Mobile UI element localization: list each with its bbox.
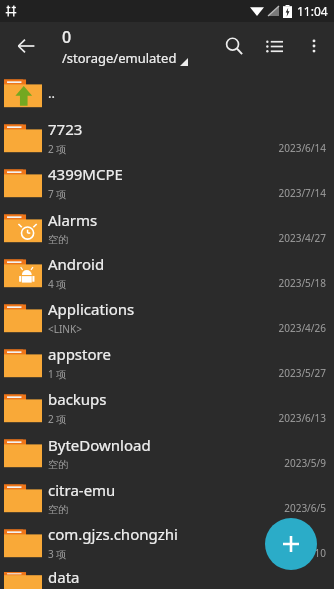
staticText: 2023/5/18	[278, 276, 326, 290]
button[interactable]: Applications	[0, 295, 334, 340]
staticText: Applications	[48, 299, 135, 319]
staticText: 4 项	[48, 277, 67, 291]
button[interactable]: Back	[4, 24, 48, 68]
staticText: ByteDownload	[48, 435, 151, 455]
staticText: /storage/emulated	[62, 49, 177, 67]
staticText: ..	[48, 84, 55, 102]
button[interactable]: 0	[62, 26, 188, 67]
staticText: 空的	[48, 503, 68, 516]
staticText: 0	[62, 26, 72, 48]
button[interactable]: 7723	[0, 115, 334, 160]
button[interactable]: Search	[214, 26, 254, 66]
staticText: 3 项	[48, 547, 67, 561]
button[interactable]: View mode	[254, 26, 294, 66]
staticText: 2 项	[48, 142, 67, 156]
staticText: 2023/4/27	[278, 231, 326, 245]
button[interactable]: Add	[265, 518, 317, 570]
button[interactable]: 4399MCPE	[0, 160, 334, 205]
staticText: 2023/6/14	[278, 141, 326, 155]
staticText: 2023/5/9	[284, 456, 326, 470]
staticText: 2023/5/27	[278, 366, 326, 380]
button[interactable]: ..	[0, 70, 334, 115]
staticText: Android	[48, 254, 105, 274]
staticText: 2023/6/5	[284, 501, 326, 515]
staticText: <LINK>	[48, 322, 82, 336]
staticText: 7 项	[48, 187, 67, 201]
button[interactable]: Android	[0, 250, 334, 295]
staticText: 2 项	[48, 412, 67, 426]
staticText: 1 项	[48, 367, 67, 381]
staticText: com.gjzs.chongzhi	[48, 524, 178, 544]
staticText: 7723	[48, 119, 83, 139]
staticText: 空的	[48, 233, 68, 246]
staticText: 2023/4/26	[278, 321, 326, 335]
staticText: 2023/5/10	[278, 546, 326, 560]
staticText: 4399MCPE	[48, 164, 123, 184]
staticText: 空的	[48, 458, 68, 471]
button[interactable]: com.gjzs.chongzhi	[0, 520, 334, 565]
staticText: 11:04	[297, 3, 328, 19]
button[interactable]: backups	[0, 385, 334, 430]
button[interactable]: appstore	[0, 340, 334, 385]
button[interactable]: data	[0, 565, 334, 589]
button[interactable]: citra-emu	[0, 475, 334, 520]
staticText: Alarms	[48, 210, 98, 230]
staticText: 2023/6/13	[278, 411, 326, 425]
staticText: backups	[48, 389, 107, 409]
button[interactable]: Alarms	[0, 205, 334, 250]
staticText: appstore	[48, 344, 111, 364]
staticText: 2023/7/14	[278, 186, 326, 200]
button[interactable]: ByteDownload	[0, 430, 334, 475]
staticText: data	[48, 567, 80, 587]
button[interactable]: More options	[294, 26, 334, 66]
staticText: citra-emu	[48, 480, 116, 500]
